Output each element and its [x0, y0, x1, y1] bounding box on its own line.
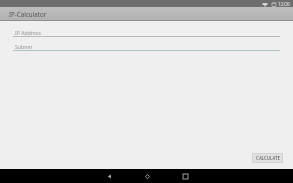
staticText: 12:00	[278, 1, 290, 7]
button[interactable]: IP Address	[13, 26, 280, 37]
staticText: Subnet	[15, 43, 33, 50]
button[interactable]: Subnet	[13, 40, 280, 51]
staticText: IP Address	[15, 29, 41, 36]
button[interactable]: CALCULATE	[252, 153, 283, 163]
button[interactable]: Recent apps	[170, 169, 200, 183]
button[interactable]: Back	[94, 169, 124, 183]
button[interactable]: Home	[132, 169, 162, 183]
staticText: IP-Calculator	[9, 10, 47, 18]
staticText: CALCULATE	[256, 155, 280, 161]
